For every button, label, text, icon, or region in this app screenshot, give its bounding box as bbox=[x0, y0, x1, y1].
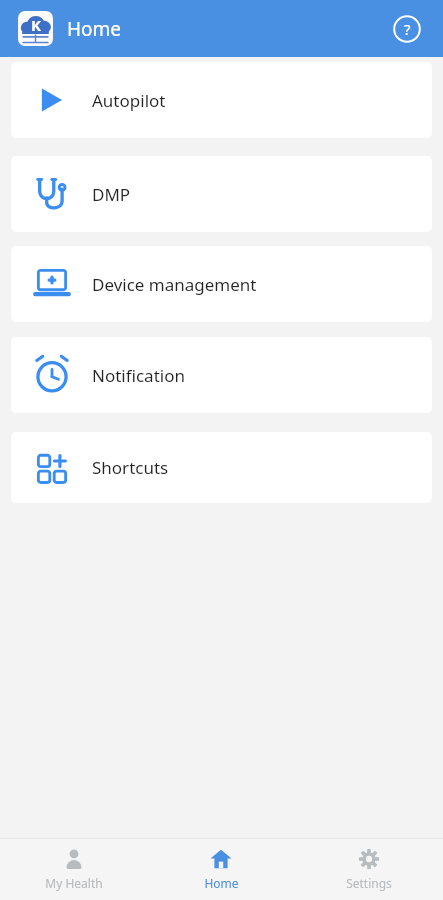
button[interactable]: Help bbox=[390, 12, 424, 46]
button[interactable]: DMP bbox=[11, 156, 432, 232]
staticText: Shortcuts bbox=[92, 456, 169, 479]
staticText: DMP bbox=[92, 183, 131, 206]
staticText: ? bbox=[404, 19, 411, 39]
staticText: K bbox=[31, 15, 41, 35]
staticText: Home bbox=[67, 16, 122, 42]
button[interactable]: Shortcuts bbox=[11, 432, 432, 503]
staticText: Notification bbox=[92, 364, 185, 387]
staticText: Autopilot bbox=[92, 89, 166, 112]
staticText: My Health bbox=[45, 875, 103, 891]
button[interactable]: Home bbox=[147, 839, 295, 900]
button[interactable]: Autopilot bbox=[11, 62, 432, 138]
button[interactable]: Notification bbox=[11, 337, 432, 413]
button[interactable]: Settings bbox=[295, 839, 443, 900]
button[interactable]: Device management bbox=[11, 246, 432, 322]
button[interactable]: My Health bbox=[0, 839, 147, 900]
staticText: Settings bbox=[346, 875, 392, 891]
staticText: Home bbox=[204, 875, 239, 891]
staticText: Device management bbox=[92, 273, 257, 296]
